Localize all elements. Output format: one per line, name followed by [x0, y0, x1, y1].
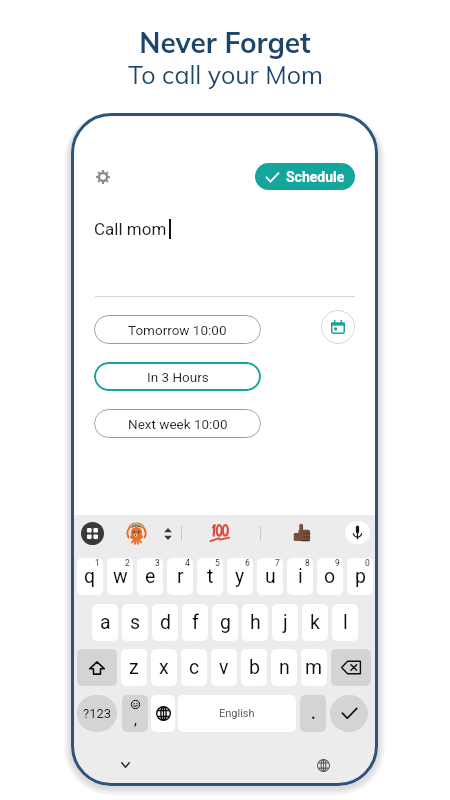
button[interactable]: j	[272, 604, 298, 641]
button[interactable]: Schedule	[255, 163, 355, 190]
staticText: i	[298, 565, 303, 588]
button[interactable]: English	[178, 695, 296, 732]
staticText: z	[129, 656, 139, 679]
button[interactable]: Voice input	[345, 521, 370, 544]
button[interactable]	[210, 523, 230, 544]
button[interactable]: h	[242, 604, 268, 641]
staticText: j	[283, 611, 288, 634]
button[interactable]	[124, 521, 148, 544]
staticText: Next week 10:00	[128, 416, 228, 432]
staticText: 0	[365, 558, 370, 568]
staticText: r	[177, 565, 184, 588]
button[interactable]: .	[300, 695, 326, 732]
staticText: m	[305, 656, 323, 679]
staticText: g	[220, 611, 231, 634]
button[interactable]: Pick date	[321, 310, 355, 344]
button[interactable]: t	[197, 558, 223, 595]
staticText: To call your Mom	[128, 59, 323, 90]
button[interactable]: m	[301, 649, 327, 686]
button[interactable]: v	[211, 649, 237, 686]
button[interactable]: ?123	[77, 695, 117, 732]
staticText: Never Forget	[139, 25, 311, 60]
button[interactable]: Done	[330, 695, 368, 732]
staticText: 2	[125, 558, 130, 568]
button[interactable]: Language	[313, 755, 333, 775]
staticText: b	[249, 656, 260, 679]
staticText: In 3 Hours	[147, 369, 209, 385]
staticText: a	[100, 611, 111, 634]
staticText: English	[219, 707, 255, 720]
staticText: t	[207, 565, 214, 588]
staticText: ?123	[83, 706, 112, 721]
staticText: e	[145, 565, 156, 588]
button[interactable]: u	[257, 558, 283, 595]
button[interactable]: e	[137, 558, 163, 595]
staticText: Tomorrow 10:00	[128, 322, 227, 338]
button[interactable]: Emoji	[122, 695, 148, 732]
button[interactable]: x	[151, 649, 177, 686]
staticText: 3	[155, 558, 160, 568]
button[interactable]: Tomorrow 10:00	[94, 315, 261, 344]
staticText: w	[113, 565, 128, 588]
button[interactable]: b	[241, 649, 267, 686]
staticText: q	[84, 565, 96, 588]
staticText: f	[192, 611, 199, 634]
button[interactable]: s	[122, 604, 148, 641]
button[interactable]: a	[92, 604, 118, 641]
staticText: 5	[215, 558, 220, 568]
button[interactable]: q	[77, 558, 103, 595]
button[interactable]: c	[181, 649, 207, 686]
staticText: s	[130, 611, 141, 634]
button[interactable]: d	[152, 604, 178, 641]
button[interactable]: Backspace	[331, 649, 371, 686]
staticText: x	[159, 656, 169, 679]
staticText: v	[219, 656, 229, 679]
staticText: u	[265, 565, 276, 588]
staticText: .	[311, 704, 316, 723]
staticText: ,	[134, 714, 137, 728]
staticText: Call mom	[94, 219, 167, 239]
staticText: p	[355, 565, 366, 588]
button[interactable]: f	[182, 604, 208, 641]
button[interactable]: k	[302, 604, 328, 641]
staticText: y	[235, 565, 245, 588]
button[interactable]: Settings	[96, 170, 110, 184]
button[interactable]: i	[287, 558, 313, 595]
staticText: c	[189, 656, 200, 679]
button[interactable]: o	[317, 558, 343, 595]
button[interactable]: y	[227, 558, 253, 595]
staticText: Schedule	[286, 169, 345, 185]
button[interactable]: n	[271, 649, 297, 686]
button[interactable]: Sticker grid	[81, 522, 104, 545]
staticText: 8	[305, 558, 310, 568]
staticText: l	[343, 611, 348, 634]
staticText: 7	[275, 558, 280, 568]
staticText: d	[160, 611, 171, 634]
button[interactable]: w	[107, 558, 133, 595]
button[interactable]: g	[212, 604, 238, 641]
button[interactable]: Change language	[151, 695, 175, 732]
button[interactable]: z	[121, 649, 147, 686]
button[interactable]: More	[163, 528, 173, 540]
button[interactable]: In 3 Hours	[94, 362, 261, 391]
button[interactable]: Hide keyboard	[115, 755, 135, 775]
staticText: 6	[245, 558, 250, 568]
button[interactable]: p	[347, 558, 373, 595]
button[interactable]: l	[332, 604, 358, 641]
staticText: 4	[185, 558, 190, 568]
staticText: 1	[95, 558, 100, 568]
staticText: o	[324, 565, 336, 588]
staticText: n	[279, 656, 290, 679]
button[interactable]: Shift	[77, 649, 117, 686]
button[interactable]	[293, 523, 312, 543]
button[interactable]: r	[167, 558, 193, 595]
staticText: 9	[335, 558, 340, 568]
staticText: k	[310, 611, 320, 634]
staticText: h	[250, 611, 261, 634]
button[interactable]: Next week 10:00	[94, 409, 261, 438]
